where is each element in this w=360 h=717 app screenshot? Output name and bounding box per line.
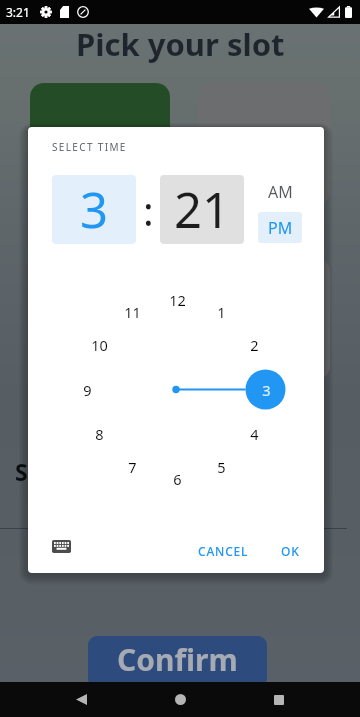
staticText: 12 (169, 290, 186, 310)
button[interactable]: 6 (161, 466, 193, 492)
button[interactable]: 21 (160, 175, 244, 244)
button[interactable] (198, 258, 330, 380)
button[interactable]: 8 (83, 421, 115, 447)
staticText: 9 (83, 380, 92, 400)
staticText: PM (268, 217, 293, 239)
button[interactable]: Back (63, 682, 99, 717)
button[interactable] (30, 83, 170, 205)
staticText: 10 (91, 335, 108, 355)
button[interactable]: 2 (238, 332, 270, 358)
button[interactable]: 10 (83, 332, 115, 358)
staticText: SELECT TIME (52, 140, 127, 154)
staticText: 4 (250, 424, 259, 444)
button[interactable]: 1 (205, 299, 237, 325)
staticText: 3 (80, 176, 109, 243)
staticText: OK (281, 543, 300, 559)
button[interactable]: AM (258, 175, 302, 208)
staticText: 21 (174, 176, 231, 243)
button[interactable]: 5 (205, 454, 237, 480)
button[interactable]: Switch to text input (42, 527, 80, 565)
button[interactable]: Recents (261, 682, 297, 717)
button[interactable] (198, 83, 330, 205)
staticText: 11 (124, 302, 141, 322)
staticText: 6 (173, 469, 182, 489)
button[interactable]: 11 (116, 299, 148, 325)
staticText: Pick your slot (76, 23, 285, 65)
staticText: 3 (262, 380, 271, 400)
staticText: 3:21 (6, 4, 30, 20)
button[interactable]: OK (269, 536, 311, 566)
button[interactable] (30, 258, 170, 380)
button[interactable]: 3 (250, 377, 282, 403)
button[interactable]: 4 (238, 421, 270, 447)
staticText: 5 (217, 457, 226, 477)
staticText: Selected (15, 456, 113, 487)
button[interactable]: 12 (161, 287, 193, 313)
button[interactable]: PM (258, 212, 302, 243)
button[interactable]: CANCEL (185, 536, 261, 566)
staticText: 8 (95, 424, 104, 444)
staticText: : (143, 183, 154, 237)
button[interactable]: Confirm (88, 636, 267, 688)
staticText: 2 (250, 335, 259, 355)
staticText: CANCEL (198, 543, 249, 559)
staticText: AM (268, 181, 293, 203)
button[interactable]: Home (162, 682, 198, 717)
button[interactable]: 7 (116, 454, 148, 480)
button[interactable]: 9 (71, 377, 103, 403)
button[interactable]: 3 (52, 175, 136, 244)
staticText: 7 (128, 457, 137, 477)
staticText: 1 (217, 302, 226, 322)
staticText: Confirm (117, 639, 238, 680)
